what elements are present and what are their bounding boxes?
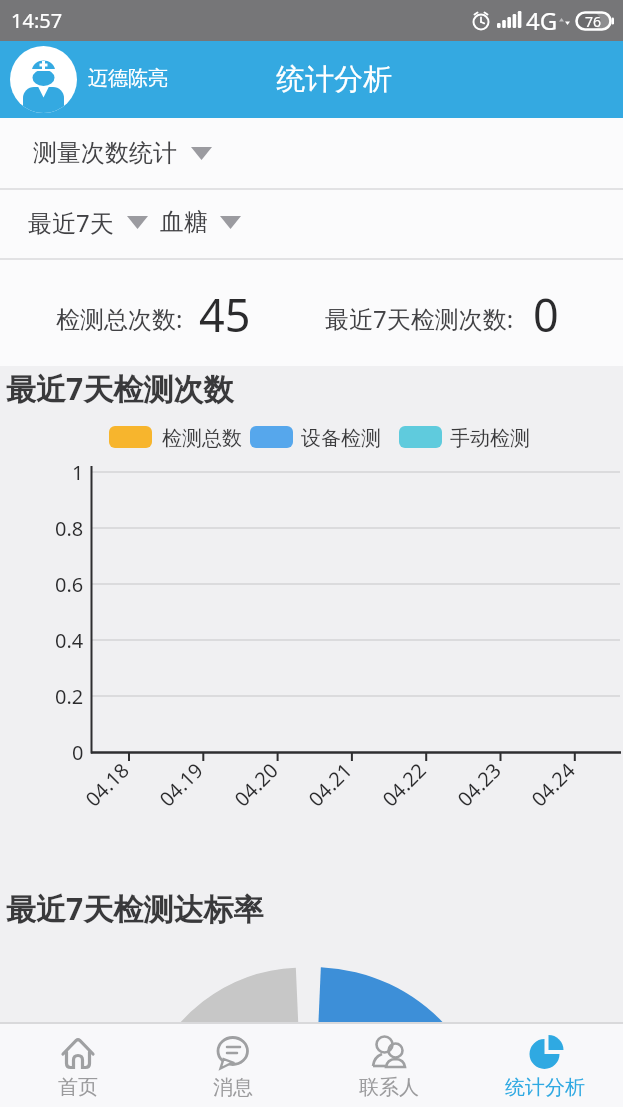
staticText: 联系人 [359,1075,419,1100]
staticText: 4G [526,4,558,37]
staticText: 设备检测 [301,426,381,448]
staticText: 0 [72,739,84,766]
staticText: 检测总次数: [56,302,183,335]
staticText: 手动检测 [450,426,530,448]
staticText: 0 [533,284,559,345]
staticText: 血糖 [160,207,208,237]
staticText: 04.24 [525,756,581,812]
staticText: 消息 [213,1075,253,1100]
staticText: 首页 [58,1075,98,1100]
staticText: 0.4 [55,627,84,654]
staticText: 04.23 [451,756,507,812]
button[interactable]: 首页 [0,1024,155,1107]
staticText: 0.2 [55,683,84,710]
staticText: 最近7天检测次数: [325,302,514,335]
staticText: 14:57 [11,7,63,34]
staticText: 统计分析 [505,1075,585,1100]
button[interactable]: 最近7天 [28,188,148,256]
button[interactable]: 联系人 [311,1024,467,1107]
button[interactable]: 统计分析 [467,1024,623,1107]
staticText: 1 [72,459,84,486]
button[interactable]: 血糖 [160,188,241,256]
staticText: 最近7天 [28,206,114,239]
staticText: 迈德陈亮 [88,66,168,91]
staticText: 0.8 [55,515,84,542]
staticText: 76 [585,12,602,31]
button[interactable] [10,46,77,113]
staticText: 04.20 [228,756,284,812]
staticText: 45 [199,284,251,345]
staticText: 检测总数 [162,426,242,448]
staticText: 04.21 [302,756,358,812]
button[interactable]: 测量次数统计 [0,118,623,188]
staticText: 04.19 [153,756,209,812]
button[interactable]: 消息 [155,1024,311,1107]
staticText: 统计分析 [276,61,392,98]
staticText: 最近7天检测次数 [6,368,234,409]
staticText: 测量次数统计 [33,138,177,168]
staticText: 04.18 [79,756,135,812]
staticText: 最近7天检测达标率 [6,888,264,929]
staticText: 04.22 [376,756,432,812]
staticText: 0.6 [55,571,84,598]
